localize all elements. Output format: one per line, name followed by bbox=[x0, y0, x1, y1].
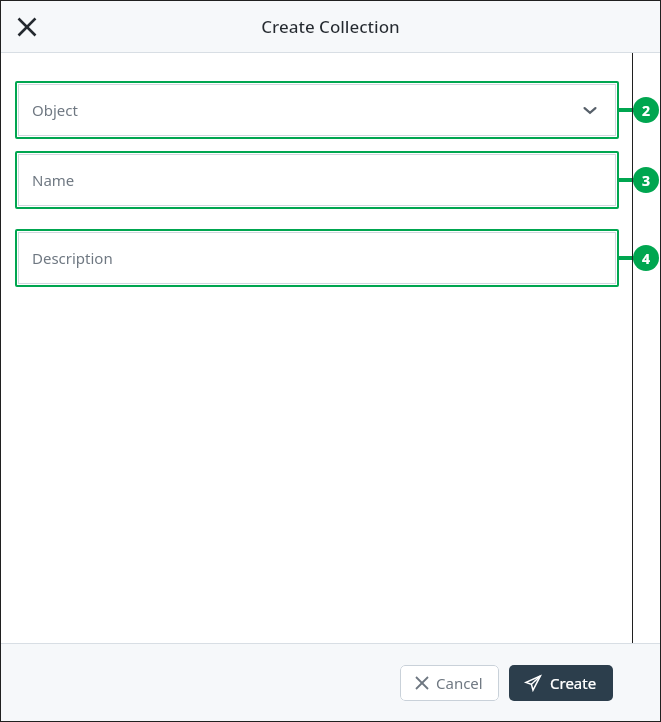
staticText: 2 bbox=[642, 101, 651, 120]
button[interactable]: Cancel bbox=[400, 665, 499, 701]
button[interactable]: Name bbox=[18, 154, 616, 206]
staticText: Description bbox=[32, 248, 113, 268]
staticText: 4 bbox=[642, 249, 651, 268]
button[interactable]: Create bbox=[509, 665, 613, 701]
staticText: Object bbox=[32, 100, 78, 120]
staticText: Name bbox=[32, 170, 75, 190]
button[interactable]: Open dropdown bbox=[580, 100, 600, 120]
staticText: 3 bbox=[642, 171, 651, 190]
staticText: Create Collection bbox=[261, 15, 400, 38]
button[interactable]: Close bbox=[10, 10, 44, 44]
button[interactable]: Description bbox=[18, 232, 616, 284]
staticText: Create bbox=[550, 673, 597, 693]
staticText: Cancel bbox=[436, 673, 483, 693]
button[interactable]: Object bbox=[18, 84, 616, 136]
